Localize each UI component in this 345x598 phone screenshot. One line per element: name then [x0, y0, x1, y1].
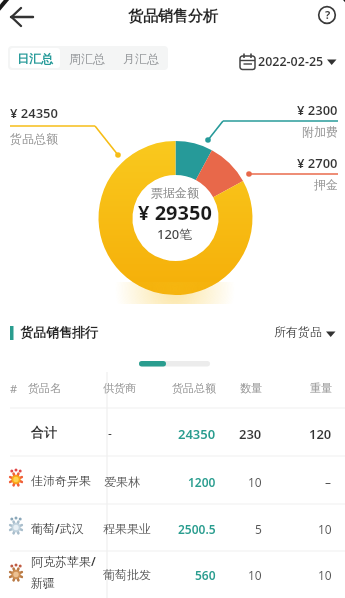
staticText: 合计 — [31, 424, 57, 440]
button[interactable]: 2022-02-25 — [236, 49, 342, 71]
staticText: 24350 — [178, 425, 216, 443]
staticText: ? — [325, 7, 331, 22]
staticText: 1200 — [188, 474, 216, 490]
staticText: - — [108, 425, 112, 441]
staticText: 货品总额 — [10, 131, 58, 146]
staticText: 120 — [309, 425, 332, 443]
staticText: 所有货品 — [274, 324, 322, 339]
staticText: 10 — [248, 474, 262, 490]
button[interactable] — [0, 552, 345, 598]
staticText: – — [325, 474, 332, 490]
staticText: 新疆 — [31, 575, 55, 590]
staticText: 葡萄批发 — [103, 567, 151, 582]
staticText: 葡萄/武汉 — [31, 520, 84, 536]
button[interactable] — [0, 457, 345, 504]
staticText: 程果果业 — [103, 521, 151, 536]
staticText: 10 — [318, 567, 332, 583]
button[interactable]: 所有货品 — [262, 321, 340, 343]
staticText: ¥ 2700 — [297, 154, 338, 172]
staticText: ¥ 29350 — [138, 199, 212, 226]
button[interactable]: 月汇总 — [114, 46, 168, 70]
staticText: ¥ 2300 — [297, 101, 338, 119]
button[interactable]: 日汇总 — [10, 48, 60, 68]
button[interactable] — [4, 2, 40, 32]
staticText: 2500.5 — [178, 521, 216, 537]
staticText: 货品销售分析 — [128, 7, 218, 26]
staticText: 月汇总 — [123, 51, 159, 66]
staticText: 数量 — [240, 381, 262, 395]
staticText: 货品名 — [28, 381, 61, 395]
staticText: 2022-02-25 — [258, 53, 324, 70]
staticText: 阿克苏苹果/ — [31, 553, 96, 569]
staticText: # — [10, 381, 18, 396]
staticText: 120笔 — [157, 225, 193, 243]
staticText: 5 — [255, 521, 262, 537]
staticText: 附加费 — [302, 124, 338, 139]
staticText: 560 — [195, 567, 216, 583]
button[interactable] — [0, 409, 345, 456]
staticText: 票据金额 — [151, 185, 199, 200]
button[interactable] — [0, 505, 345, 551]
staticText: 货品销售排行 — [20, 324, 98, 340]
staticText: 日汇总 — [17, 51, 53, 66]
staticText: 230 — [239, 425, 262, 443]
staticText: 货品总额 — [172, 381, 216, 395]
staticText: 爱果林 — [104, 474, 140, 489]
staticText: 周汇总 — [69, 51, 105, 66]
staticText: 供货商 — [103, 381, 136, 395]
button[interactable]: 周汇总 — [60, 46, 114, 70]
button[interactable]: ? — [317, 4, 338, 25]
staticText: 10 — [318, 521, 332, 537]
staticText: 重量 — [310, 381, 332, 395]
staticText: ¥ 24350 — [10, 104, 58, 122]
staticText: 押金 — [314, 177, 338, 192]
staticText: 10 — [248, 567, 262, 583]
staticText: 佳沛奇异果 — [31, 473, 91, 488]
